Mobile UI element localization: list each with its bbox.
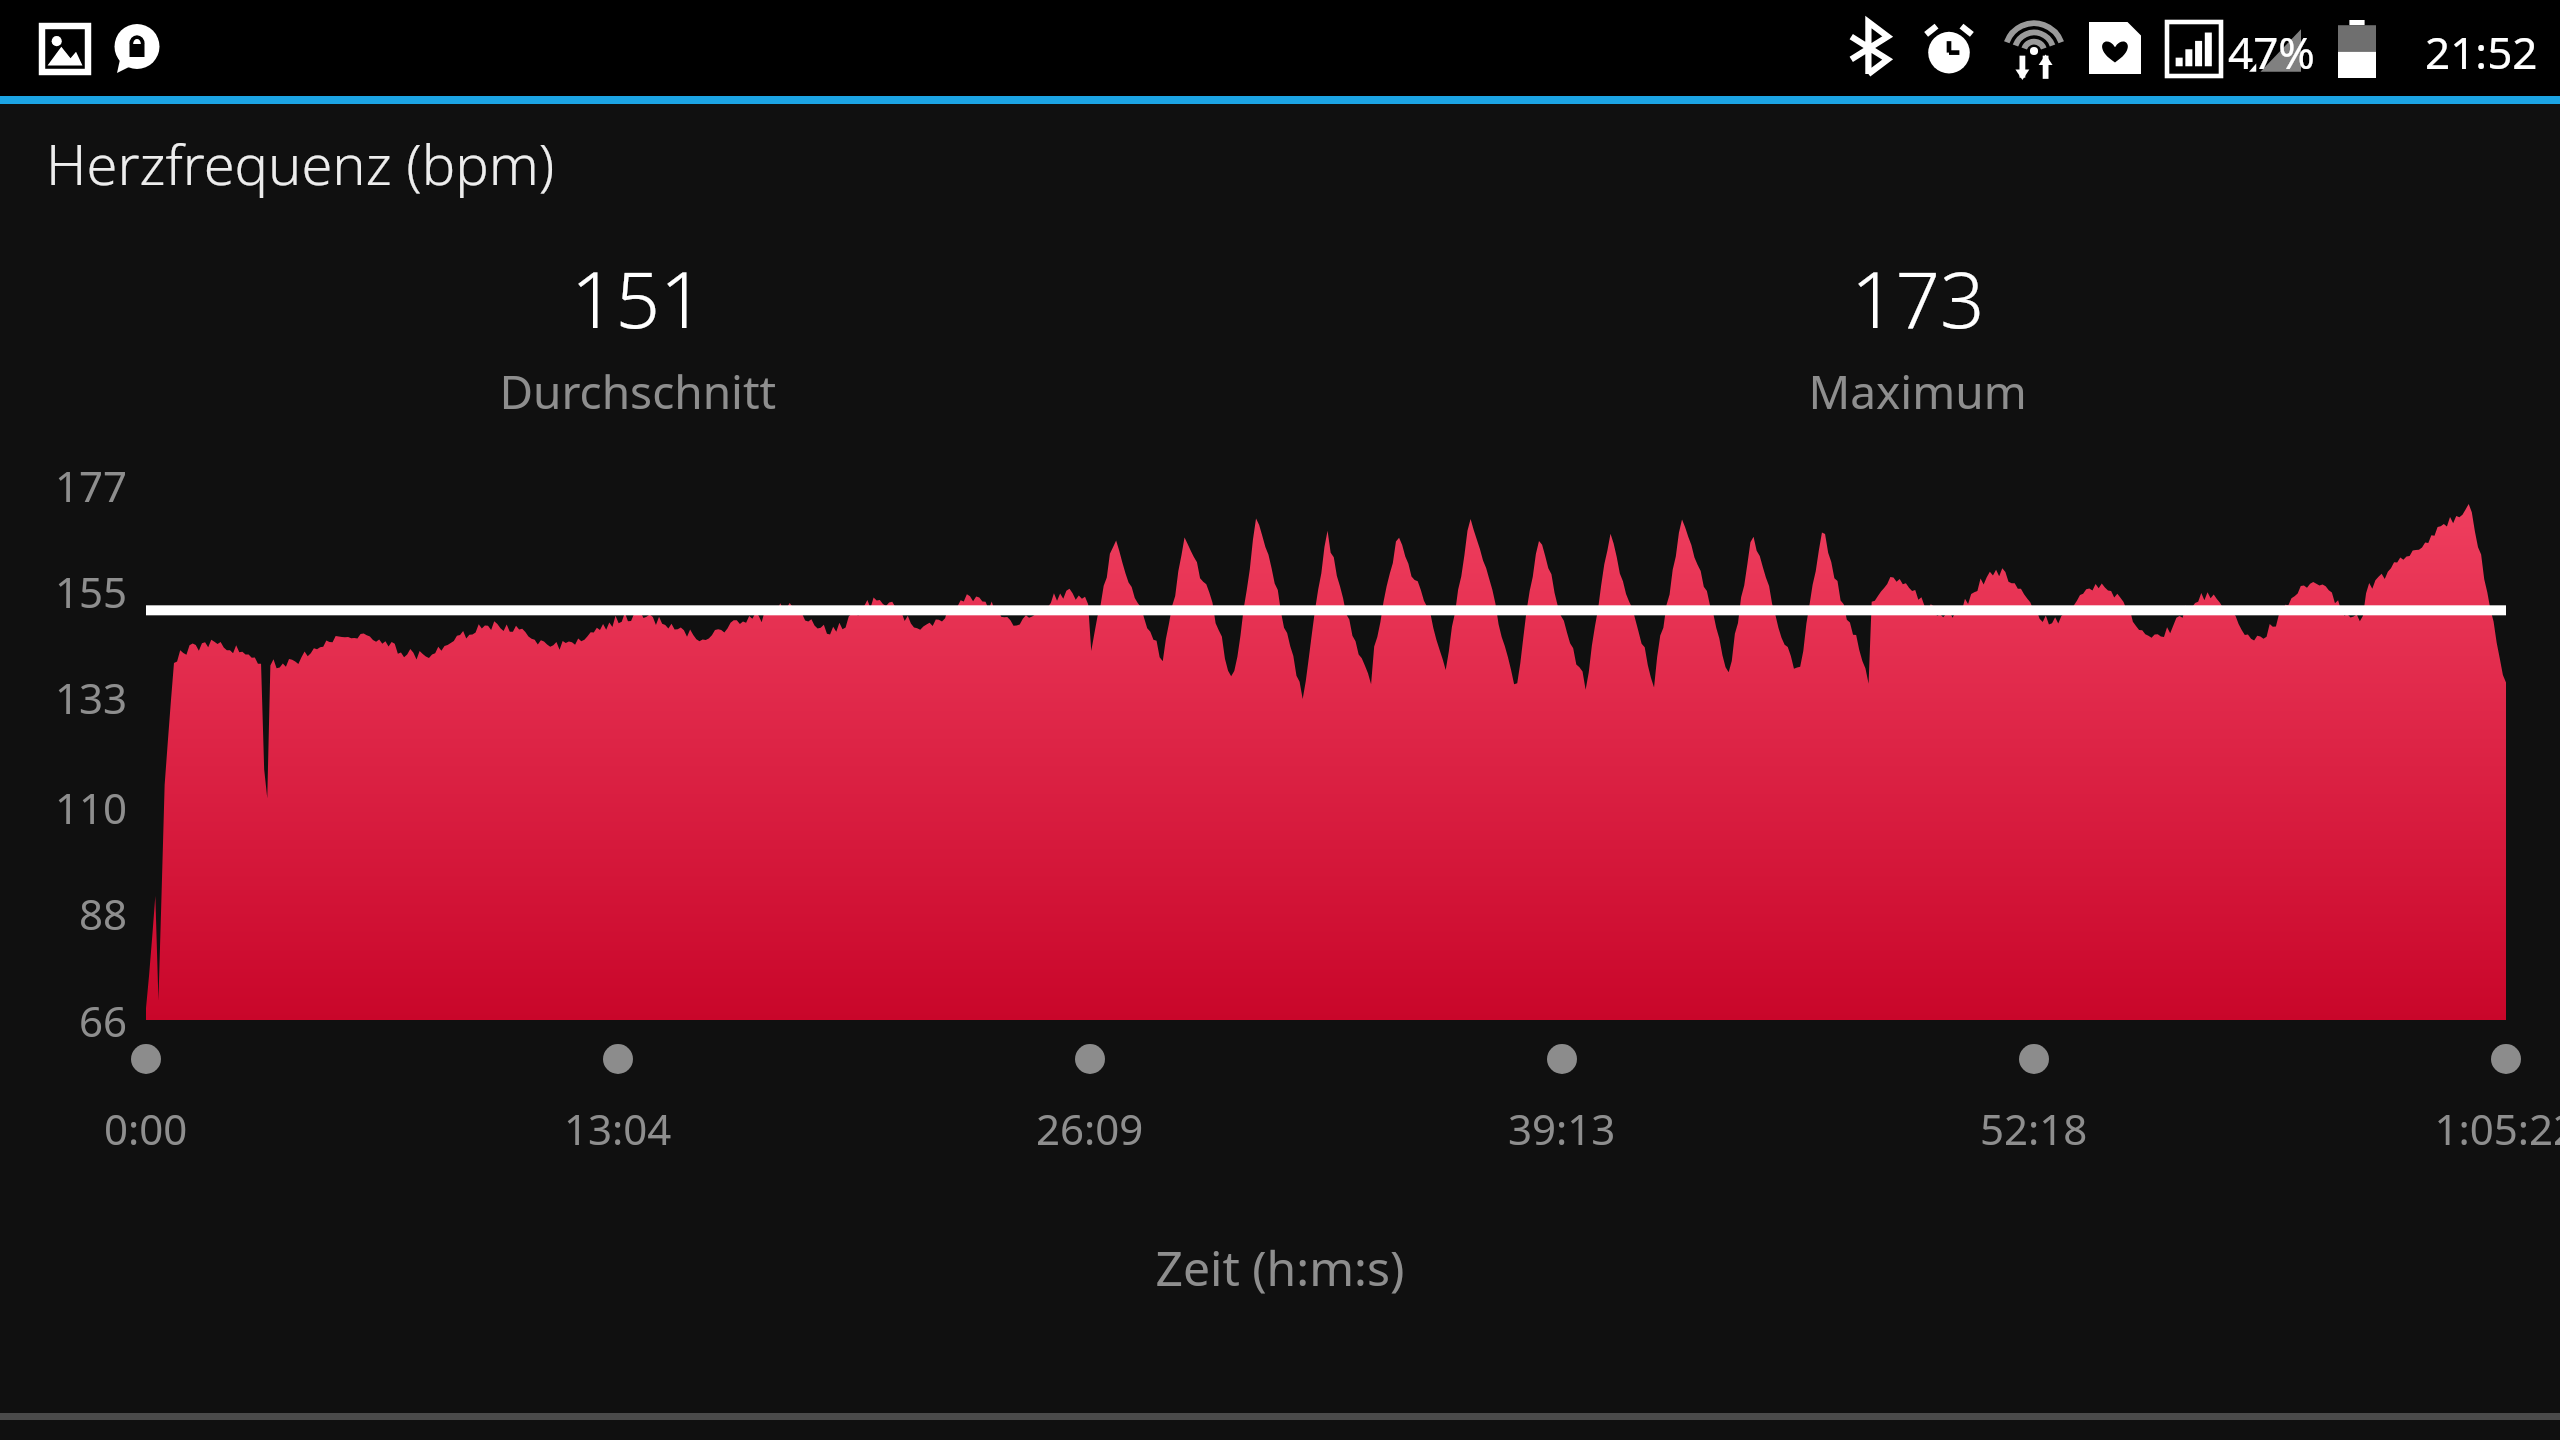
button[interactable]: Herzfrequenz Diagramm — [0, 0, 2560, 1440]
